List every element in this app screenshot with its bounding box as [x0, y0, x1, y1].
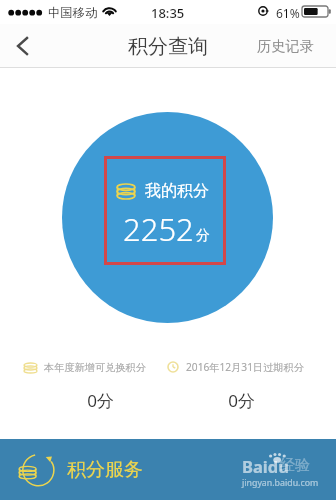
staticText: 61%: [276, 5, 300, 21]
staticText: 0分: [212, 389, 271, 412]
staticText: 中国移动: [48, 5, 98, 20]
staticText: 我的积分: [145, 181, 209, 201]
staticText: 2016年12月31日过期积分: [186, 360, 304, 374]
staticText: jingyan.baidu.com: [242, 477, 319, 489]
staticText: 分: [196, 227, 210, 245]
staticText: 18:35: [151, 4, 185, 22]
button[interactable]: 返回: [0, 24, 44, 68]
staticText: 历史记录: [257, 37, 315, 55]
button[interactable]: 历史记录: [257, 37, 315, 55]
staticText: 本年度新增可兑换积分: [44, 361, 146, 374]
staticText: Baidu: [242, 455, 289, 477]
staticText: 经验: [280, 456, 310, 475]
staticText: 积分查询: [128, 34, 208, 59]
staticText: 2252: [123, 208, 194, 250]
staticText: 积分服务: [67, 458, 143, 482]
staticText: 0分: [71, 389, 130, 412]
button[interactable]: 积分服务: [0, 439, 160, 500]
